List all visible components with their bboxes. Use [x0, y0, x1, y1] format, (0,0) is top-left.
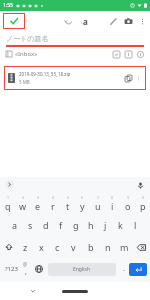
- staticText: p: [140, 200, 146, 212]
- staticText: n: [105, 241, 111, 253]
- staticText: g: [73, 219, 79, 231]
- button[interactable]: Change language: [32, 258, 46, 280]
- staticText: y: [80, 200, 85, 212]
- button[interactable]: 2: [15, 192, 30, 214]
- button[interactable]: Done: [3, 13, 25, 29]
- button[interactable]: n: [99, 236, 116, 258]
- button[interactable]: Enter: [129, 263, 147, 276]
- button[interactable]: 3: [30, 192, 45, 214]
- staticText: k: [118, 219, 123, 231]
- staticText: a: [12, 219, 18, 231]
- button[interactable]: v: [65, 236, 82, 258]
- staticText: 2: [22, 195, 25, 200]
- staticText: h: [88, 219, 94, 231]
- button[interactable]: ?123: [3, 258, 19, 280]
- button[interactable]: f: [53, 214, 68, 236]
- staticText: English: [73, 266, 91, 273]
- button[interactable]: c: [49, 236, 65, 258]
- button[interactable]: 8: [105, 192, 120, 214]
- staticText: ,: [25, 267, 27, 277]
- button[interactable]: Undo: [63, 16, 73, 26]
- staticText: 9: [127, 195, 130, 200]
- button[interactable]: z: [17, 236, 33, 258]
- button[interactable]: a: [7, 214, 23, 236]
- staticText: v: [71, 241, 76, 253]
- staticText: m: [120, 241, 129, 253]
- staticText: w: [19, 200, 27, 212]
- button[interactable]: Home: [62, 290, 88, 293]
- button[interactable]: x: [33, 236, 49, 258]
- button[interactable]: Voice input: [135, 180, 145, 190]
- staticText: t: [66, 200, 70, 212]
- button[interactable]: 1: [0, 192, 15, 214]
- button[interactable]: g: [68, 214, 83, 236]
- button[interactable]: Tag: [124, 50, 132, 58]
- staticText: a: [83, 16, 88, 27]
- staticText: 4: [52, 195, 55, 200]
- button[interactable]: 7: [90, 192, 105, 214]
- button[interactable]: Hide keyboard: [28, 286, 38, 296]
- button[interactable]: .: [118, 258, 129, 280]
- staticText: ノートの題名: [6, 34, 49, 43]
- button[interactable]: 4: [45, 192, 60, 214]
- staticText: u: [95, 200, 101, 212]
- button[interactable]: s: [23, 214, 38, 236]
- button[interactable]: k: [113, 214, 128, 236]
- button[interactable]: j: [98, 214, 113, 236]
- staticText: 5: [67, 195, 70, 200]
- button[interactable]: Reminder: [112, 50, 120, 58]
- button[interactable]: 6: [75, 192, 90, 214]
- button[interactable]: Redo: [78, 16, 88, 26]
- button[interactable]: Info: [136, 50, 144, 58]
- staticText: 7: [97, 195, 100, 200]
- button[interactable]: Camera: [123, 16, 133, 26]
- button[interactable]: Copy: [124, 74, 133, 83]
- button[interactable]: h: [83, 214, 98, 236]
- button[interactable]: Backspace: [133, 236, 150, 258]
- staticText: .: [123, 264, 125, 274]
- button[interactable]: 5: [60, 192, 75, 214]
- staticText: o: [125, 200, 131, 212]
- button[interactable]: 0: [135, 192, 150, 214]
- button[interactable]: b: [82, 236, 99, 258]
- button[interactable]: English: [48, 263, 116, 276]
- button[interactable]: 9: [120, 192, 135, 214]
- button[interactable]: Expand toolbar: [5, 180, 14, 189]
- button[interactable]: d: [38, 214, 53, 236]
- staticText: f: [59, 219, 63, 231]
- staticText: 0: [142, 195, 145, 200]
- staticText: 5 MB: [19, 79, 30, 85]
- button[interactable]: l: [128, 214, 143, 236]
- staticText: ?123: [5, 265, 18, 273]
- staticText: s: [28, 219, 33, 231]
- staticText: i: [111, 200, 114, 212]
- staticText: «Inbox»: [15, 50, 38, 58]
- button[interactable]: Shift: [0, 236, 17, 258]
- button[interactable]: Attach: [108, 16, 118, 26]
- staticText: 6: [81, 195, 84, 200]
- staticText: 3: [37, 195, 40, 200]
- staticText: e: [35, 200, 41, 212]
- button[interactable]: 2019-09-30,13_55_18.zip: [4, 66, 146, 90]
- button[interactable]: Attachment options: [135, 75, 142, 82]
- staticText: d: [43, 219, 49, 231]
- staticText: @: [23, 261, 28, 267]
- staticText: c: [55, 241, 60, 253]
- staticText: 8: [111, 195, 114, 200]
- staticText: x: [39, 241, 44, 253]
- staticText: b: [88, 241, 94, 253]
- staticText: 1: [7, 195, 10, 200]
- button[interactable]: More options: [137, 16, 147, 26]
- button[interactable]: @: [19, 258, 32, 280]
- staticText: 1:55: [3, 2, 13, 9]
- button[interactable]: m: [116, 236, 133, 258]
- staticText: r: [51, 200, 55, 212]
- staticText: j: [104, 219, 107, 231]
- button[interactable]: «Inbox»: [6, 47, 144, 60]
- staticText: 2019-09-30,13_55_18.zip: [19, 71, 71, 77]
- staticText: q: [5, 200, 11, 212]
- staticText: z: [23, 241, 28, 253]
- staticText: l: [134, 219, 137, 231]
